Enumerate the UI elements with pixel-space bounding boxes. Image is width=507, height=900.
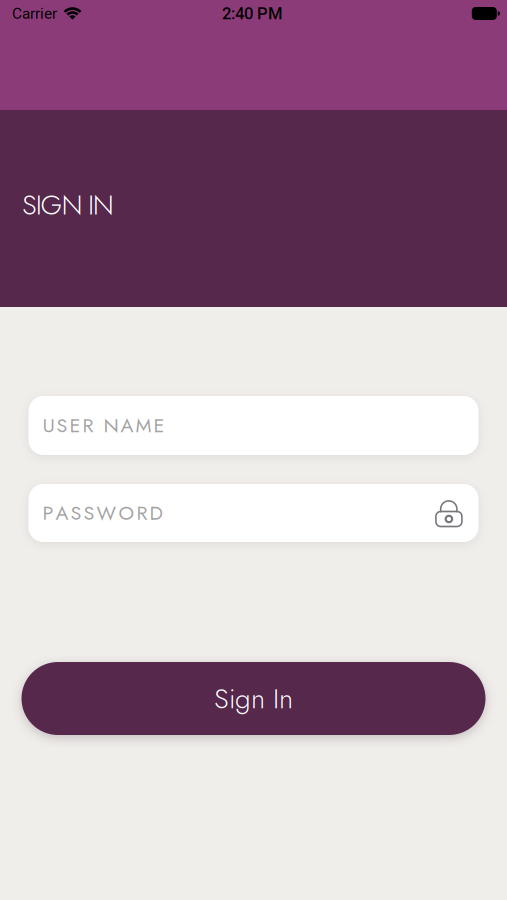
- button[interactable]: Sign In: [21, 662, 485, 735]
- staticText: U S E R N A M E: [42, 411, 164, 440]
- staticText: SIGN IN: [22, 184, 114, 225]
- staticText: P A S S W O R D: [42, 499, 162, 527]
- staticText: Carrier: [12, 4, 57, 22]
- staticText: Sign In: [214, 678, 293, 719]
- staticText: 2:40 PM: [222, 4, 283, 23]
- button[interactable]: U S E R N A M E: [28, 396, 478, 455]
- button[interactable]: P A S S W O R D: [28, 484, 478, 542]
